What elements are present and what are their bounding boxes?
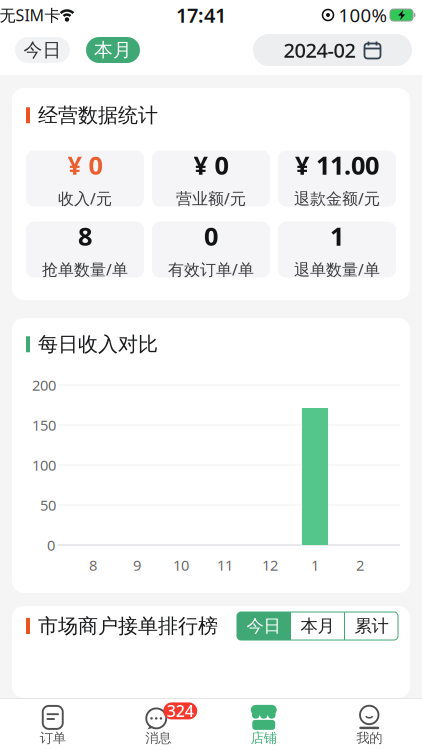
button[interactable]: 订单 <box>0 699 105 750</box>
staticText: 市场商户接单排行榜 <box>38 614 218 638</box>
staticText: 收入/元 <box>58 188 112 209</box>
staticText: 今日 <box>23 38 61 61</box>
staticText: 本月 <box>94 38 132 61</box>
staticText: 11 <box>217 555 233 575</box>
button[interactable]: 2024-02 <box>253 34 412 66</box>
staticText: 有效订单/单 <box>168 259 254 280</box>
staticText: 订单 <box>40 730 66 746</box>
staticText: 150 <box>32 415 56 435</box>
staticText: 8 <box>89 555 97 575</box>
staticText: 经营数据统计 <box>38 103 158 128</box>
staticText: ¥ 11.00 <box>295 148 379 182</box>
staticText: 2 <box>356 555 364 575</box>
staticText: ¥ 0 <box>193 148 228 182</box>
staticText: 无SIM卡 <box>0 4 60 26</box>
staticText: 100 <box>32 455 56 475</box>
staticText: 营业额/元 <box>176 188 246 209</box>
staticText: 抢单数量/单 <box>42 259 128 280</box>
staticText: 200 <box>32 375 56 395</box>
staticText: 17:41 <box>176 2 226 28</box>
staticText: 退款金额/元 <box>294 188 380 209</box>
button[interactable]: 今日 <box>15 37 70 63</box>
staticText: 324 <box>167 700 194 721</box>
staticText: 8 <box>78 219 92 253</box>
staticText: 今日 <box>246 615 280 637</box>
staticText: 我的 <box>356 730 382 746</box>
staticText: 每日收入对比 <box>38 332 158 357</box>
staticText: 0 <box>204 219 218 253</box>
staticText: 0 <box>47 535 55 555</box>
staticText: 100% <box>338 3 387 27</box>
staticText: 12 <box>262 555 278 575</box>
button[interactable]: 店铺 <box>211 699 316 750</box>
staticText: 消息 <box>145 730 171 746</box>
staticText: 1 <box>330 219 344 253</box>
staticText: 本月 <box>300 615 334 637</box>
button[interactable]: 324 <box>105 699 211 750</box>
staticText: 1 <box>311 555 319 575</box>
staticText: 累计 <box>354 615 388 637</box>
button[interactable]: 本月 <box>86 37 140 63</box>
staticText: 退单数量/单 <box>294 259 380 280</box>
staticText: 9 <box>133 555 141 575</box>
staticText: 10 <box>173 555 189 575</box>
staticText: ¥ 0 <box>67 148 102 182</box>
button[interactable]: 我的 <box>316 699 422 750</box>
button[interactable]: 本月 <box>291 612 344 640</box>
button[interactable]: 今日 <box>237 612 290 640</box>
staticText: 50 <box>40 495 56 515</box>
staticText: 店铺 <box>251 730 277 746</box>
staticText: 2024-02 <box>283 37 355 63</box>
button[interactable]: 累计 <box>345 612 398 640</box>
